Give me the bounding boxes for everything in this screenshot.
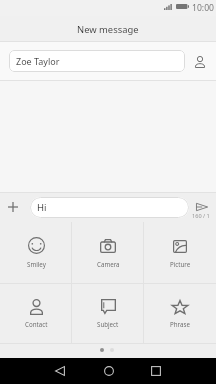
button[interactable]: Home <box>94 358 124 384</box>
button[interactable]: Add attachment <box>2 196 25 218</box>
button[interactable]: Back <box>45 358 75 384</box>
staticText: 160 / 1 <box>192 212 210 220</box>
button[interactable]: Subject <box>72 284 144 343</box>
staticText: Smiley <box>27 260 46 268</box>
button[interactable]: Camera <box>72 222 144 283</box>
staticText: Phrase <box>170 320 190 328</box>
button[interactable]: Smiley <box>0 222 72 283</box>
staticText: Picture <box>170 260 191 268</box>
button[interactable]: Zoe Taylor <box>9 50 185 72</box>
button[interactable]: Phrase <box>144 284 216 343</box>
staticText: Hi <box>37 201 47 214</box>
button[interactable]: Contact <box>0 284 72 343</box>
button[interactable]: Hi <box>30 197 189 218</box>
button[interactable]: Send <box>190 192 216 222</box>
staticText: 10:00 <box>192 2 214 14</box>
staticText: Camera <box>97 260 120 268</box>
button[interactable]: Recents <box>141 358 171 384</box>
staticText: Zoe Taylor <box>16 55 60 67</box>
staticText: Subject <box>97 320 119 328</box>
staticText: Contact <box>25 320 48 328</box>
staticText: New message <box>77 23 139 36</box>
button[interactable]: Picture <box>144 222 216 283</box>
button[interactable]: Add contact <box>188 47 212 71</box>
